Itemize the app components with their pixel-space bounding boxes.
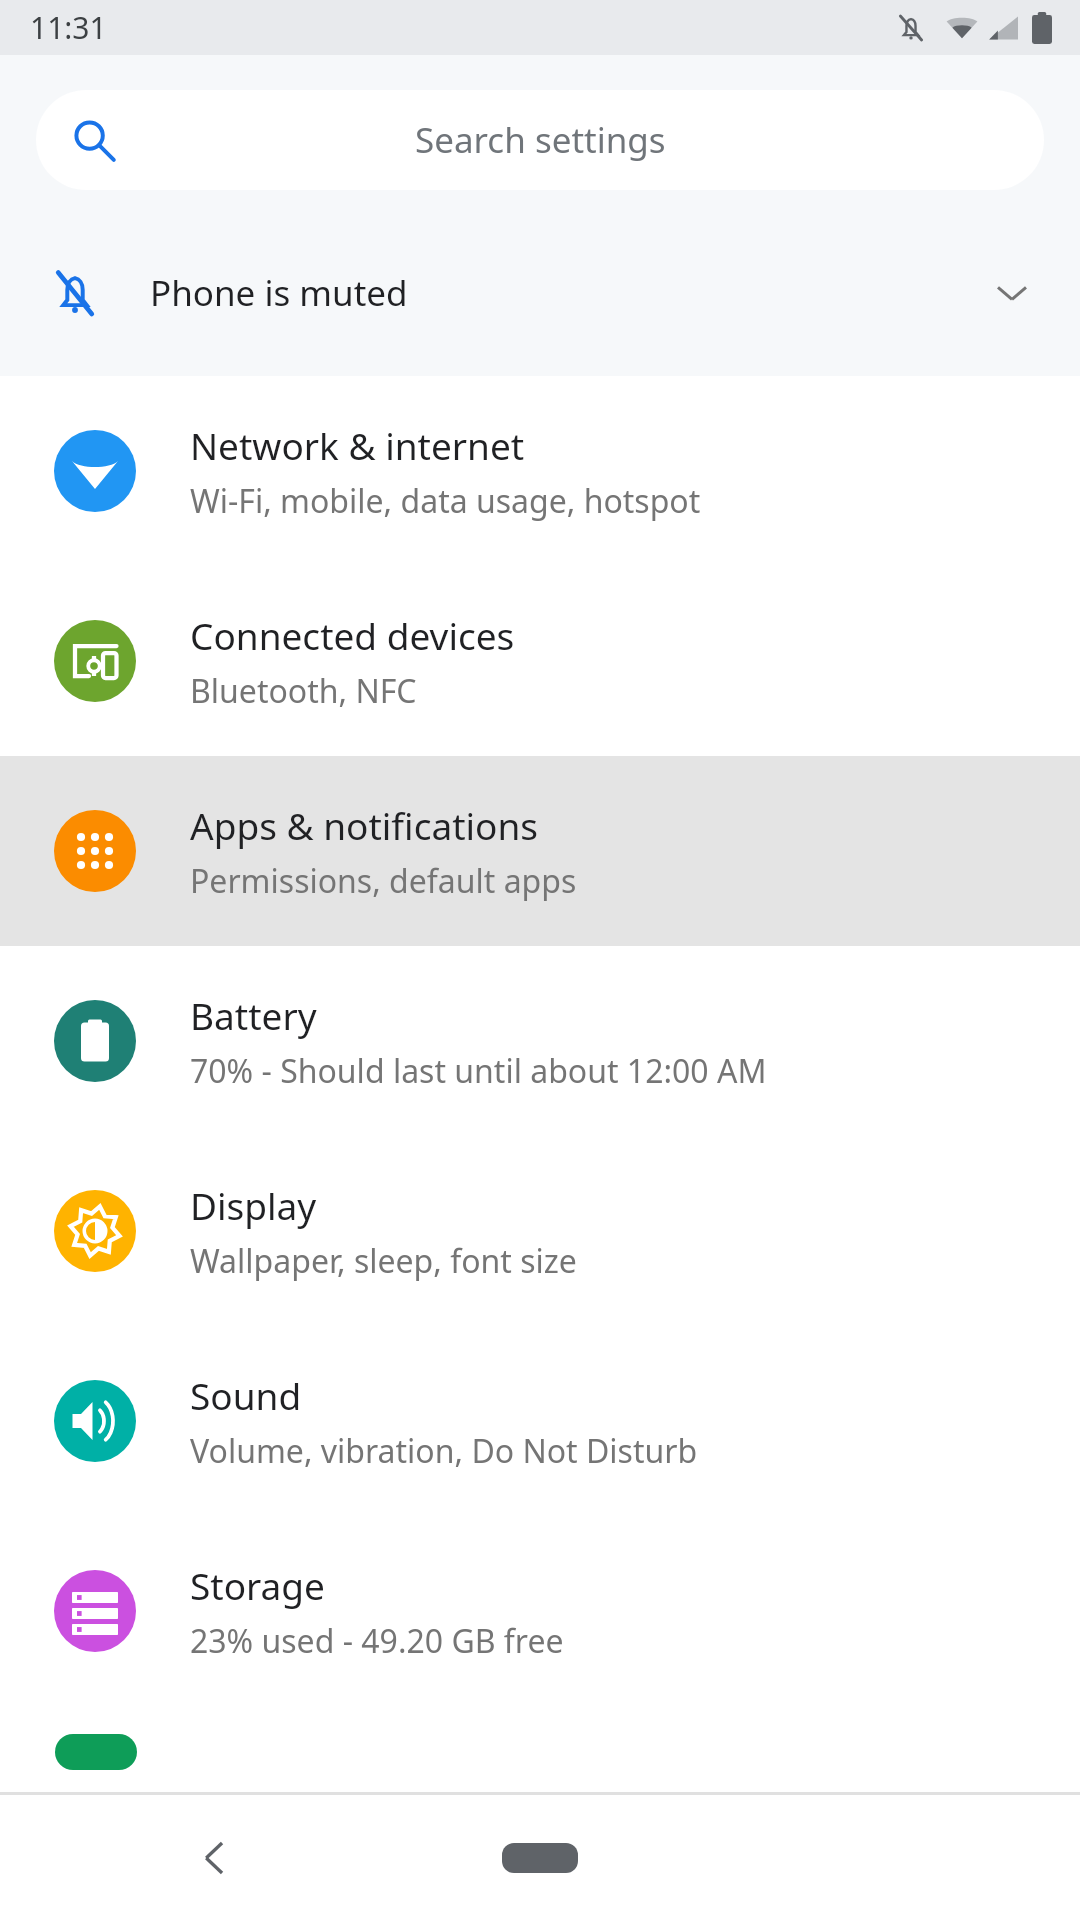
- staticText: Bluetooth, NFC: [190, 669, 417, 713]
- button[interactable]: Network & internet: [0, 376, 1080, 566]
- staticText: Wallpaper, sleep, font size: [190, 1239, 577, 1283]
- button[interactable]: Apps & notifications: [0, 756, 1080, 946]
- button[interactable]: Back: [175, 1818, 255, 1898]
- staticText: Search settings: [415, 116, 666, 164]
- button[interactable]: Search settings: [36, 90, 1044, 190]
- staticText: Permissions, default apps: [190, 859, 577, 903]
- staticText: Network & internet: [190, 420, 525, 470]
- button[interactable]: Sound: [0, 1326, 1080, 1516]
- staticText: 11:31: [30, 7, 107, 48]
- staticText: Sound: [190, 1370, 302, 1420]
- button[interactable]: Home: [475, 1813, 605, 1903]
- staticText: Apps & notifications: [190, 800, 539, 850]
- staticText: Wi-Fi, mobile, data usage, hotspot: [190, 479, 701, 523]
- button[interactable]: Battery: [0, 946, 1080, 1136]
- staticText: Phone is muted: [150, 269, 408, 317]
- button[interactable]: Storage: [0, 1516, 1080, 1706]
- button[interactable]: Phone is muted: [0, 238, 1080, 348]
- staticText: Volume, vibration, Do Not Disturb: [190, 1429, 698, 1473]
- staticText: Storage: [190, 1560, 325, 1610]
- button[interactable]: Display: [0, 1136, 1080, 1326]
- staticText: 23% used - 49.20 GB free: [190, 1619, 564, 1663]
- button[interactable]: Connected devices: [0, 566, 1080, 756]
- staticText: Battery: [190, 990, 317, 1040]
- staticText: Display: [190, 1180, 317, 1230]
- staticText: Connected devices: [190, 610, 515, 660]
- staticText: 70% - Should last until about 12:00 AM: [190, 1049, 767, 1093]
